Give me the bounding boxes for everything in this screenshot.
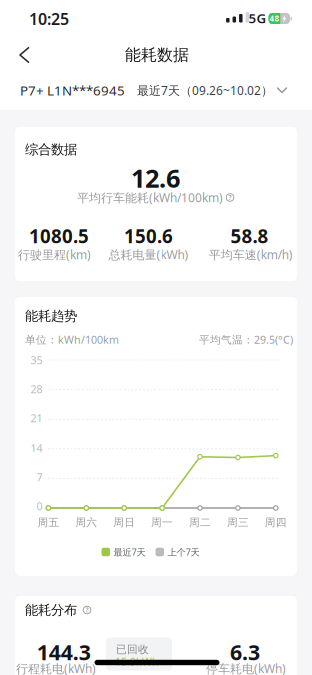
button[interactable]: Help — [83, 606, 91, 614]
staticText: 150.6 — [124, 224, 173, 248]
staticText: 能耗分布 — [25, 602, 77, 618]
staticText: 144.3 — [37, 638, 91, 666]
staticText: 平均气温：29.5(°C) — [199, 332, 293, 347]
staticText: 周四 — [265, 516, 287, 529]
staticText: 能耗趋势 — [25, 308, 77, 324]
staticText: 周五 — [37, 516, 59, 529]
staticText: 28 — [30, 382, 42, 396]
staticText: 行程耗电(kWh) — [16, 660, 96, 675]
staticText: 15.9kWh — [115, 654, 159, 669]
staticText: 单位：kWh/100km — [25, 332, 119, 347]
staticText: 周二 — [189, 516, 211, 529]
staticText: 周六 — [75, 516, 97, 529]
staticText: 停车耗电(kWh) — [206, 660, 286, 675]
staticText: P7+ L1N***6945 — [20, 81, 125, 99]
staticText: 6.3 — [230, 638, 260, 666]
button[interactable]: Help — [226, 193, 234, 201]
staticText: 最近7天 — [113, 546, 145, 558]
staticText: 12.6 — [131, 161, 180, 195]
staticText: 平均车速(km/h) — [209, 246, 293, 262]
staticText: 35 — [30, 353, 42, 367]
staticText: 10:25 — [29, 8, 69, 29]
button[interactable]: Back — [8, 40, 38, 70]
staticText: 14 — [30, 441, 42, 455]
staticText: 58.8 — [230, 224, 268, 248]
staticText: 上个7天 — [167, 546, 199, 558]
staticText: 0 — [36, 499, 42, 513]
staticText: 综合数据 — [25, 141, 77, 158]
staticText: 7 — [36, 470, 42, 484]
staticText: 21 — [30, 411, 42, 425]
staticText: 48 — [269, 13, 279, 24]
staticText: 周日 — [113, 516, 135, 529]
staticText: 周一 — [151, 516, 173, 529]
staticText: 已回收 — [116, 643, 149, 656]
staticText: 平均行车能耗(kWh/100km) — [77, 189, 223, 205]
staticText: ? — [228, 193, 231, 202]
staticText: 行驶里程(km) — [18, 246, 91, 262]
staticText: 最近7天（09.26~10.02） — [137, 82, 273, 98]
staticText: ? — [85, 606, 88, 614]
staticText: 能耗数据 — [125, 45, 189, 65]
staticText: 总耗电量(kWh) — [108, 246, 188, 262]
staticText: 周三 — [227, 516, 249, 529]
button[interactable]: 最近7天（09.26~10.02） — [7, 82, 287, 98]
staticText: 1080.5 — [29, 224, 89, 248]
staticText: 5G — [248, 9, 266, 27]
